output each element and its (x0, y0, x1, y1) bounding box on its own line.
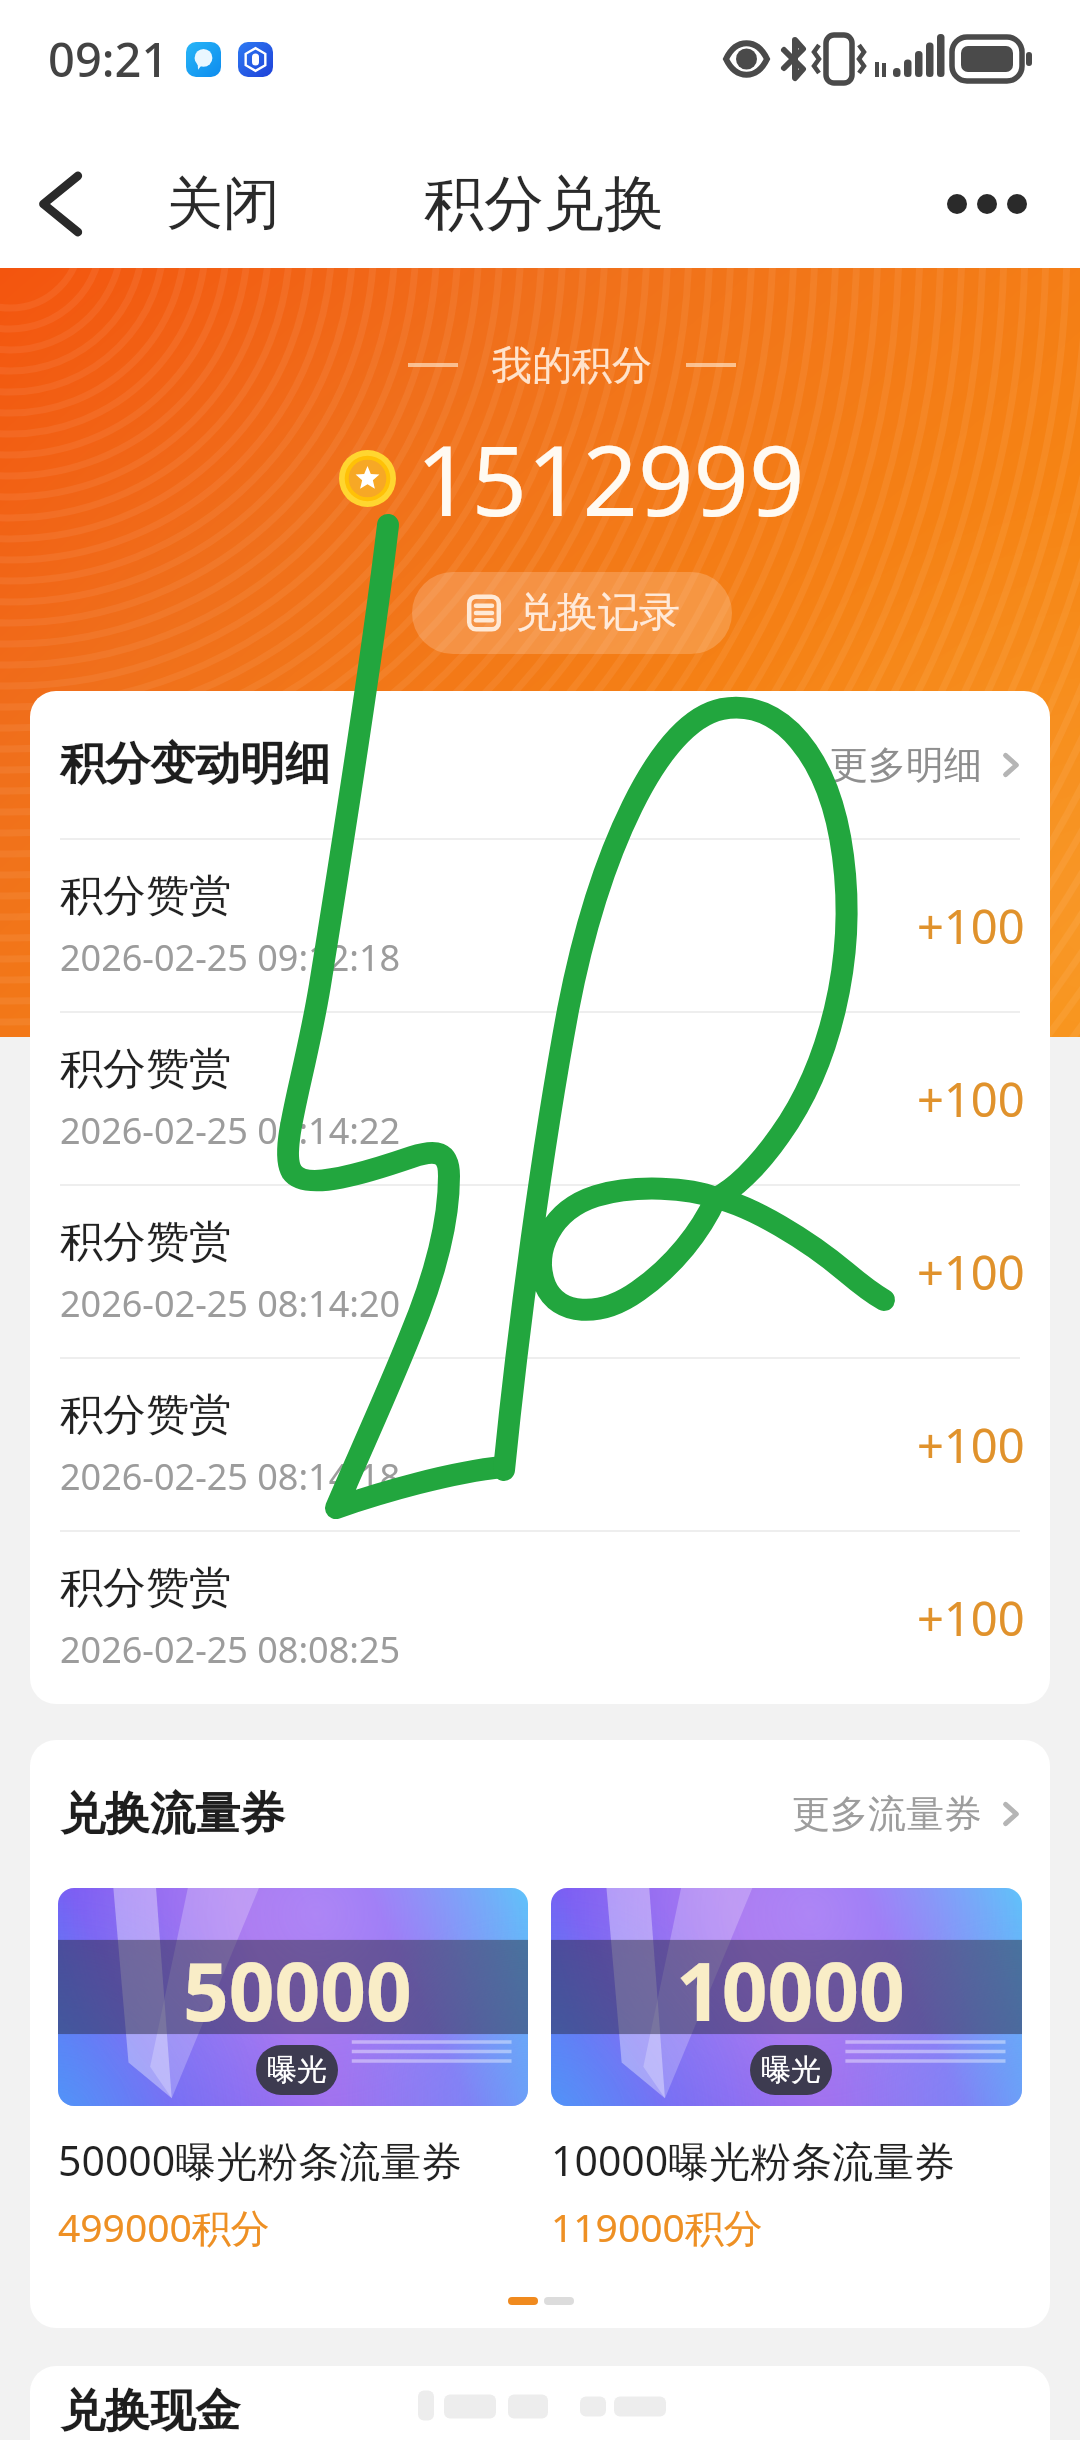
button[interactable]: 兑换记录 (412, 572, 732, 654)
staticText: +100 (917, 1067, 1025, 1131)
staticText: 更多流量券 (792, 1790, 982, 1838)
staticText: 积分赞赏 (60, 869, 232, 923)
button[interactable]: 积分赞赏 (30, 1359, 1050, 1530)
staticText: 50000曝光粉条流量券 (58, 2132, 463, 2188)
staticText: 曝光 (267, 2051, 327, 2089)
staticText: 10000曝光粉条流量券 (551, 2132, 956, 2188)
staticText: 50000 (183, 1935, 412, 2044)
staticText: 积分赞赏 (60, 1561, 232, 1615)
staticText: 兑换记录 (516, 587, 680, 639)
button[interactable]: 更多流量券 (792, 1776, 1026, 1852)
staticText: 10000 (676, 1935, 905, 2044)
staticText: 更多明细 (830, 741, 982, 789)
staticText: +100 (917, 1413, 1025, 1477)
button[interactable]: 10000 (551, 1888, 1022, 2253)
button[interactable]: 50000 (58, 1888, 528, 2253)
staticText: 兑换现金 (60, 2383, 240, 2440)
button[interactable]: 更多选项 (933, 150, 1041, 258)
button[interactable]: 更多明细 (830, 727, 1026, 803)
staticText: 2026-02-25 08:14:20 (60, 1279, 401, 1328)
staticText: 积分兑换 (424, 166, 664, 242)
button[interactable]: 积分赞赏 (30, 1532, 1050, 1703)
staticText: +100 (917, 894, 1025, 958)
staticText: 2026-02-25 08:14:22 (60, 1106, 401, 1155)
button[interactable]: 积分赞赏 (30, 1186, 1050, 1357)
staticText: 积分赞赏 (60, 1042, 232, 1096)
staticText: 2026-02-25 08:08:25 (60, 1625, 401, 1674)
staticText: 09:21 (48, 27, 169, 91)
staticText: 2026-02-25 09:12:18 (60, 933, 401, 982)
staticText: 2026-02-25 08:14:18 (60, 1452, 401, 1501)
button[interactable]: 关闭 (162, 148, 284, 260)
button[interactable]: 返回 (12, 156, 108, 252)
staticText: +100 (917, 1240, 1025, 1304)
staticText: 499000积分 (58, 2200, 270, 2253)
staticText: 积分赞赏 (60, 1215, 232, 1269)
staticText: 我的积分 (492, 340, 652, 390)
staticText: 曝光 (761, 2051, 821, 2089)
button[interactable]: 积分赞赏 (30, 840, 1050, 1011)
staticText: +100 (917, 1586, 1025, 1650)
staticText: 119000积分 (551, 2200, 763, 2253)
staticText: 积分赞赏 (60, 1388, 232, 1442)
staticText: 兑换流量券 (60, 1786, 285, 1843)
staticText: 积分变动明细 (60, 736, 330, 793)
staticText: 关闭 (166, 168, 280, 240)
staticText: 1512999 (416, 412, 805, 544)
button[interactable]: 积分赞赏 (30, 1013, 1050, 1184)
